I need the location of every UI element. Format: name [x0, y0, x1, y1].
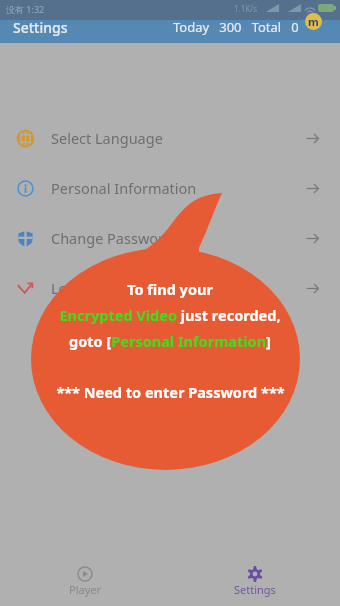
staticText: Personal Information: [51, 178, 197, 198]
button[interactable]: Settings: [170, 553, 340, 606]
staticText: To find your: [127, 279, 213, 299]
staticText: 没有 1:32: [6, 3, 45, 15]
staticText: m: [308, 14, 319, 29]
staticText: Today 300 Total 0: [173, 18, 299, 36]
button[interactable]: Change Password: [0, 213, 340, 263]
staticText: Settings: [234, 582, 276, 597]
staticText: goto [Personal Information]: [69, 331, 271, 351]
staticText: Encrypted Video just recorded,: [59, 305, 281, 325]
staticText: Logout: [51, 278, 100, 298]
button[interactable]: Player: [0, 553, 170, 606]
staticText: Change Password: [51, 228, 173, 248]
button[interactable]: Logout: [0, 263, 340, 313]
button[interactable]: Account: [305, 13, 322, 30]
button[interactable]: Select Language: [0, 113, 340, 163]
staticText: Select Language: [51, 128, 163, 148]
staticText: Player: [69, 582, 102, 597]
button[interactable]: Personal Information: [0, 163, 340, 213]
staticText: 1.1K/s: [234, 3, 258, 14]
staticText: Settings: [13, 18, 68, 37]
staticText: *** Need to enter Password ***: [56, 382, 285, 402]
